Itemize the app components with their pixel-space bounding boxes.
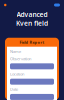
staticText: Date xyxy=(10,87,18,92)
staticText: Location xyxy=(10,71,24,77)
staticText: Observation xyxy=(10,56,31,61)
staticText: Advanced xyxy=(16,10,47,19)
staticText: Field Report xyxy=(19,40,44,45)
staticText: Name xyxy=(10,49,21,54)
staticText: Kven field xyxy=(16,19,48,28)
